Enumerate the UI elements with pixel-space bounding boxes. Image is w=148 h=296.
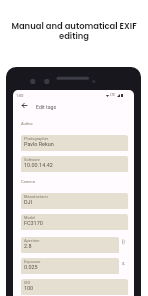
staticText: 1:00 xyxy=(16,93,24,97)
button[interactable]: Exposure xyxy=(21,258,119,274)
staticText: Model xyxy=(24,215,36,220)
staticText: Author xyxy=(21,121,33,126)
staticText: LTE xyxy=(110,93,116,97)
staticText: 100 xyxy=(24,285,34,291)
staticText: Aperture xyxy=(24,238,40,243)
staticText: Manual and automatical EXIF editing xyxy=(4,20,144,42)
button[interactable]: Back xyxy=(18,99,30,111)
staticText: ISO xyxy=(24,280,31,285)
staticText: Exposure xyxy=(24,259,41,264)
staticText: s. xyxy=(122,261,126,266)
staticText: Photographer xyxy=(24,136,49,141)
staticText: Camera xyxy=(21,179,35,184)
button[interactable]: Aperture xyxy=(21,237,119,253)
button[interactable]: Model xyxy=(21,214,128,230)
button[interactable]: Software xyxy=(21,156,128,172)
staticText: Software xyxy=(24,157,40,162)
staticText: Manufacturer xyxy=(24,194,49,199)
staticText: Edit tags xyxy=(36,104,57,110)
staticText: DJI xyxy=(24,199,33,205)
staticText: FC3170 xyxy=(24,220,43,226)
staticText: 2.8 xyxy=(24,243,32,249)
staticText: f/ xyxy=(122,240,126,245)
button[interactable]: Manufacturer xyxy=(21,193,128,209)
button[interactable]: ISO xyxy=(21,279,128,295)
staticText: Pavlo Rekun xyxy=(24,141,54,147)
button[interactable]: Photographer xyxy=(21,135,128,151)
staticText: 10.00.14.42 xyxy=(24,162,53,168)
staticText: 0.025 xyxy=(24,264,38,270)
